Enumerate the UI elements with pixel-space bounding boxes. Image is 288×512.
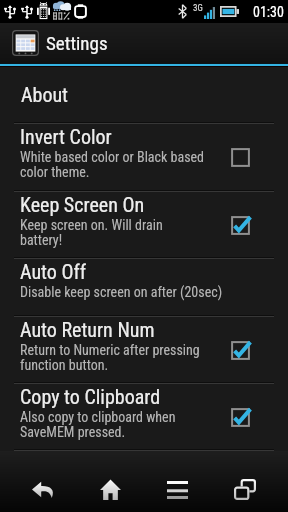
button[interactable]: Toggle	[223, 400, 257, 434]
staticText: Auto Off	[20, 260, 87, 283]
button[interactable]: Home	[77, 459, 144, 512]
staticText: Also copy to clipboard when SaveMEM pres…	[20, 409, 176, 440]
staticText: 01:30	[253, 4, 284, 20]
staticText: About	[21, 83, 69, 106]
button[interactable]: Invert Color	[0, 124, 288, 190]
button[interactable]: Menu	[144, 459, 211, 512]
button[interactable]: Recent apps	[211, 459, 278, 512]
staticText: 3G	[193, 3, 203, 14]
staticText: Disable keep screen on after (20sec)	[20, 284, 223, 300]
staticText: Settings	[46, 32, 108, 54]
staticText: Return to Numeric after pressing functio…	[20, 342, 200, 373]
staticText: Keep Screen On	[20, 193, 145, 216]
button[interactable]: Toggle	[223, 208, 257, 242]
button[interactable]: Copy to Clipboard	[0, 384, 288, 449]
staticText: Invert Color	[20, 125, 112, 148]
button[interactable]: Toggle	[223, 140, 257, 174]
button[interactable]: Toggle	[223, 333, 257, 367]
button[interactable]: Keep Screen On	[0, 192, 288, 257]
button[interactable]: Auto Return Num	[0, 317, 288, 382]
button[interactable]: Auto Off	[0, 259, 288, 315]
staticText: Auto Return Num	[20, 318, 155, 341]
staticText: Keep screen on. Will drain battery!	[20, 217, 163, 248]
button[interactable]: Back	[10, 459, 77, 512]
staticText: Copy to Clipboard	[20, 385, 161, 408]
staticText: White based color or Black based color t…	[20, 149, 205, 180]
